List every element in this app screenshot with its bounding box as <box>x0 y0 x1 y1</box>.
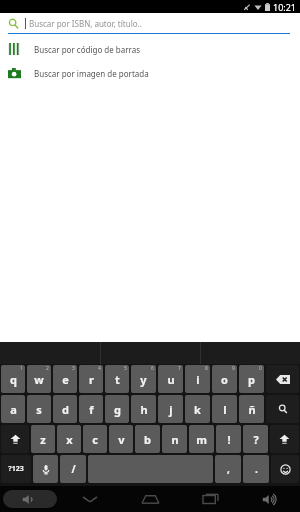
button[interactable]: Search <box>0 13 300 33</box>
staticText: 9 <box>232 365 235 372</box>
button[interactable]: a <box>1 395 25 423</box>
staticText: n <box>171 432 179 447</box>
staticText: m <box>196 432 207 447</box>
button[interactable]: w <box>27 365 51 393</box>
other: Barcode scan <box>8 43 20 55</box>
button[interactable]: b <box>135 425 160 453</box>
staticText: l <box>223 402 227 417</box>
button[interactable]: Voice input <box>33 455 58 483</box>
staticText: 3 <box>72 365 75 372</box>
button[interactable]: d <box>53 395 77 423</box>
staticText: i <box>196 372 200 387</box>
staticText: Buscar por código de barras <box>34 44 141 55</box>
staticText: 4 <box>98 365 101 372</box>
staticText: / <box>71 462 76 476</box>
button[interactable]: ñ <box>239 395 264 423</box>
other: Cover image search <box>8 67 21 80</box>
button[interactable]: ! <box>216 425 241 453</box>
staticText: z <box>40 432 46 447</box>
staticText: 7 <box>178 365 181 372</box>
button[interactable]: c <box>83 425 107 453</box>
staticText: k <box>194 402 201 417</box>
button[interactable]: Emoji <box>271 455 299 483</box>
button[interactable]: o <box>212 365 237 393</box>
staticText: s <box>36 402 42 417</box>
button[interactable]: Recent apps <box>180 486 240 512</box>
staticText: 1 <box>20 365 23 372</box>
staticText: a <box>10 402 17 417</box>
staticText: y <box>140 372 147 387</box>
staticText: 10:21 <box>273 1 297 13</box>
button[interactable]: Shift <box>1 425 29 453</box>
staticText: r <box>89 372 94 387</box>
staticText: v <box>118 432 125 447</box>
staticText: Buscar por imagen de portada <box>34 68 149 79</box>
staticText: 2 <box>46 365 49 372</box>
button[interactable]: Shift <box>270 425 299 453</box>
button[interactable]: n <box>162 425 187 453</box>
staticText: w <box>34 372 44 387</box>
button[interactable]: f <box>79 395 103 423</box>
button[interactable]: z <box>31 425 55 453</box>
button[interactable]: t <box>105 365 129 393</box>
button[interactable]: q <box>1 365 25 393</box>
staticText: g <box>114 402 121 417</box>
staticText: d <box>62 402 69 417</box>
staticText: ?123 <box>8 464 24 474</box>
staticText: ! <box>227 432 231 447</box>
staticText: t <box>115 372 120 387</box>
button[interactable]: y <box>131 365 156 393</box>
button[interactable]: e <box>53 365 77 393</box>
staticText: x <box>66 432 73 447</box>
button[interactable]: g <box>105 395 129 423</box>
staticText: o <box>221 372 228 387</box>
staticText: b <box>144 432 151 447</box>
staticText: h <box>140 402 148 417</box>
button[interactable]: Home <box>120 486 180 512</box>
button[interactable]: ?123 <box>1 455 31 483</box>
button[interactable]: r <box>79 365 103 393</box>
button[interactable]: Volume up <box>240 486 300 512</box>
button[interactable]: k <box>185 395 210 423</box>
staticText: 0 <box>259 365 262 372</box>
button[interactable]: x <box>57 425 81 453</box>
button[interactable]: Cover image search <box>0 63 300 83</box>
button[interactable]: Barcode scan <box>0 39 300 59</box>
button[interactable]: s <box>27 395 51 423</box>
button[interactable]: ? <box>243 425 268 453</box>
staticText: j <box>169 402 173 417</box>
staticText: 8 <box>205 365 208 372</box>
staticText: c <box>92 432 98 447</box>
button[interactable]: v <box>109 425 133 453</box>
staticText: q <box>10 372 17 387</box>
staticText: f <box>89 402 94 417</box>
button[interactable]: . <box>243 455 269 483</box>
staticText: ? <box>253 432 259 447</box>
button[interactable]: j <box>158 395 183 423</box>
staticText: p <box>248 372 255 387</box>
staticText: , <box>227 462 230 476</box>
staticText: 6 <box>151 365 154 372</box>
button[interactable]: u <box>158 365 183 393</box>
button[interactable]: l <box>212 395 237 423</box>
button[interactable]: Backspace <box>266 365 299 393</box>
other: Search <box>8 18 19 29</box>
button[interactable]: h <box>131 395 156 423</box>
button[interactable]: Search <box>266 395 299 423</box>
button[interactable]: p <box>239 365 264 393</box>
staticText: e <box>62 372 69 387</box>
staticText: ñ <box>248 402 256 417</box>
button[interactable]: i <box>185 365 210 393</box>
staticText: u <box>167 372 175 387</box>
button[interactable]: Back <box>60 486 120 512</box>
staticText: 5 <box>124 365 127 372</box>
button[interactable]: Volume down <box>0 486 60 512</box>
button[interactable]: / <box>60 455 86 483</box>
staticText: Buscar por ISBN, autor, título.. <box>29 18 142 29</box>
button[interactable]: , <box>215 455 241 483</box>
staticText: . <box>255 462 258 476</box>
button[interactable]: m <box>189 425 214 453</box>
